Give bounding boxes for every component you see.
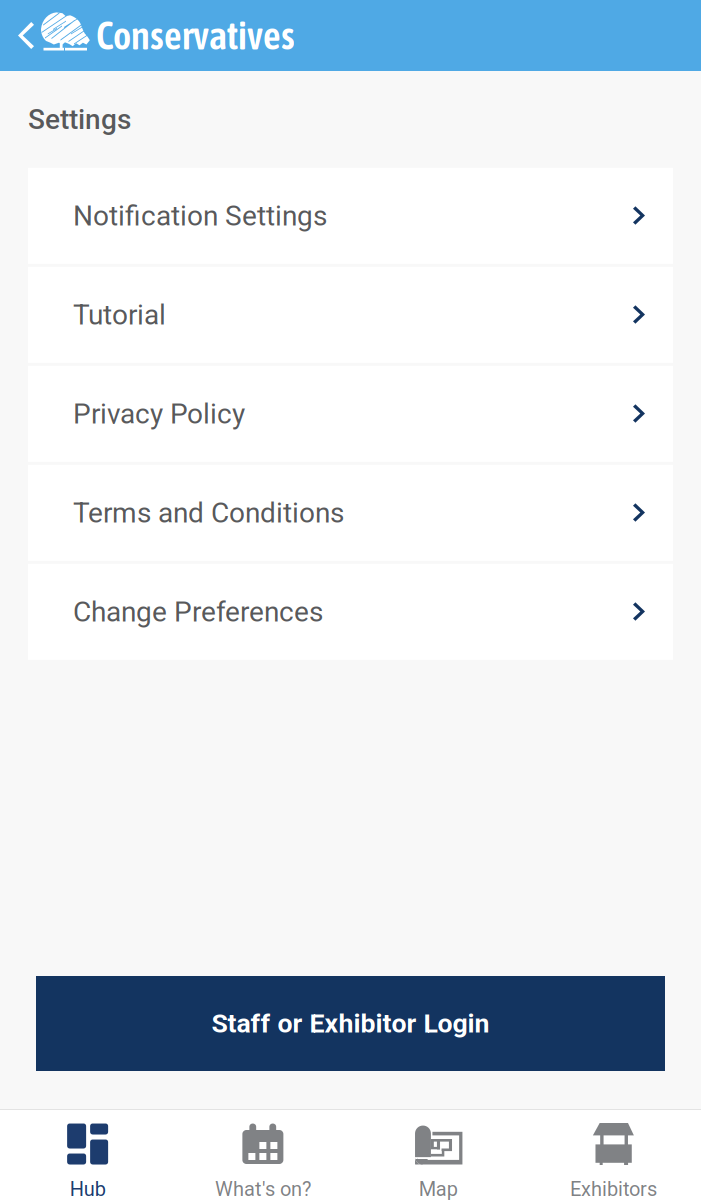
button[interactable]: Change Preferences: [28, 564, 673, 660]
button[interactable]: Hub: [0, 1109, 175, 1200]
staticText: Change Preferences: [73, 595, 323, 628]
button[interactable]: Exhibitors: [526, 1109, 701, 1200]
button[interactable]: Tutorial: [28, 267, 673, 363]
staticText: Map: [419, 1178, 458, 1200]
button[interactable]: Notification Settings: [28, 168, 673, 264]
staticText: Staff or Exhibitor Login: [211, 1008, 489, 1039]
staticText: Terms and Conditions: [73, 496, 344, 529]
staticText: What's on?: [215, 1178, 311, 1200]
staticText: Notification Settings: [73, 199, 327, 232]
staticText: Hub: [70, 1178, 106, 1200]
button[interactable]: Privacy Policy: [28, 366, 673, 462]
button[interactable]: Staff or Exhibitor Login: [36, 976, 665, 1071]
staticText: Privacy Policy: [73, 397, 245, 430]
staticText: Tutorial: [73, 298, 166, 331]
button[interactable]: Map: [350, 1109, 526, 1200]
staticText: Settings: [28, 103, 131, 136]
staticText: Exhibitors: [570, 1178, 657, 1200]
button[interactable]: What's on?: [175, 1109, 350, 1200]
button[interactable]: Terms and Conditions: [28, 465, 673, 561]
staticText: Conservatives: [96, 13, 295, 58]
button[interactable]: Back: [0, 0, 41, 71]
